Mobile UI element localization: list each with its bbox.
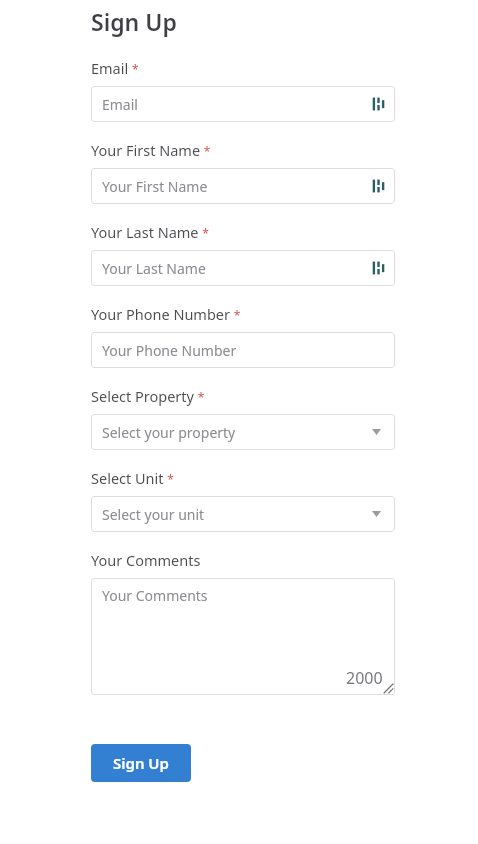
button[interactable]: Your Phone Number — [91, 332, 395, 368]
staticText: Sign Up — [91, 6, 177, 37]
button[interactable]: Email — [91, 86, 395, 122]
button[interactable]: Sign Up — [91, 744, 191, 782]
staticText: Your Phone Number * — [91, 304, 241, 324]
staticText: Email * — [91, 58, 139, 78]
staticText: Your Comments — [102, 586, 208, 605]
staticText: Select Property * — [91, 386, 205, 406]
staticText: Select Unit * — [91, 468, 174, 488]
other: Autofill — [372, 178, 386, 194]
button[interactable]: Your Last Name — [91, 250, 395, 286]
button[interactable]: Your Comments — [91, 578, 395, 695]
staticText: Your Last Name — [102, 259, 206, 278]
staticText: Your Last Name * — [91, 222, 209, 242]
staticText: Your Comments — [91, 550, 201, 570]
button[interactable]: Select your unit — [91, 496, 395, 532]
staticText: Your First Name * — [91, 140, 211, 160]
other: Autofill — [372, 96, 386, 112]
staticText: Select your unit — [102, 505, 205, 524]
other: Autofill — [372, 260, 386, 276]
button[interactable]: Select your property — [91, 414, 395, 450]
staticText: Your First Name — [102, 177, 208, 196]
staticText: 2000 — [346, 667, 383, 689]
staticText: Select your property — [102, 423, 236, 442]
staticText: Email — [102, 95, 138, 114]
staticText: Your Phone Number — [102, 341, 237, 360]
staticText: Sign Up — [113, 753, 169, 773]
button[interactable]: Your First Name — [91, 168, 395, 204]
